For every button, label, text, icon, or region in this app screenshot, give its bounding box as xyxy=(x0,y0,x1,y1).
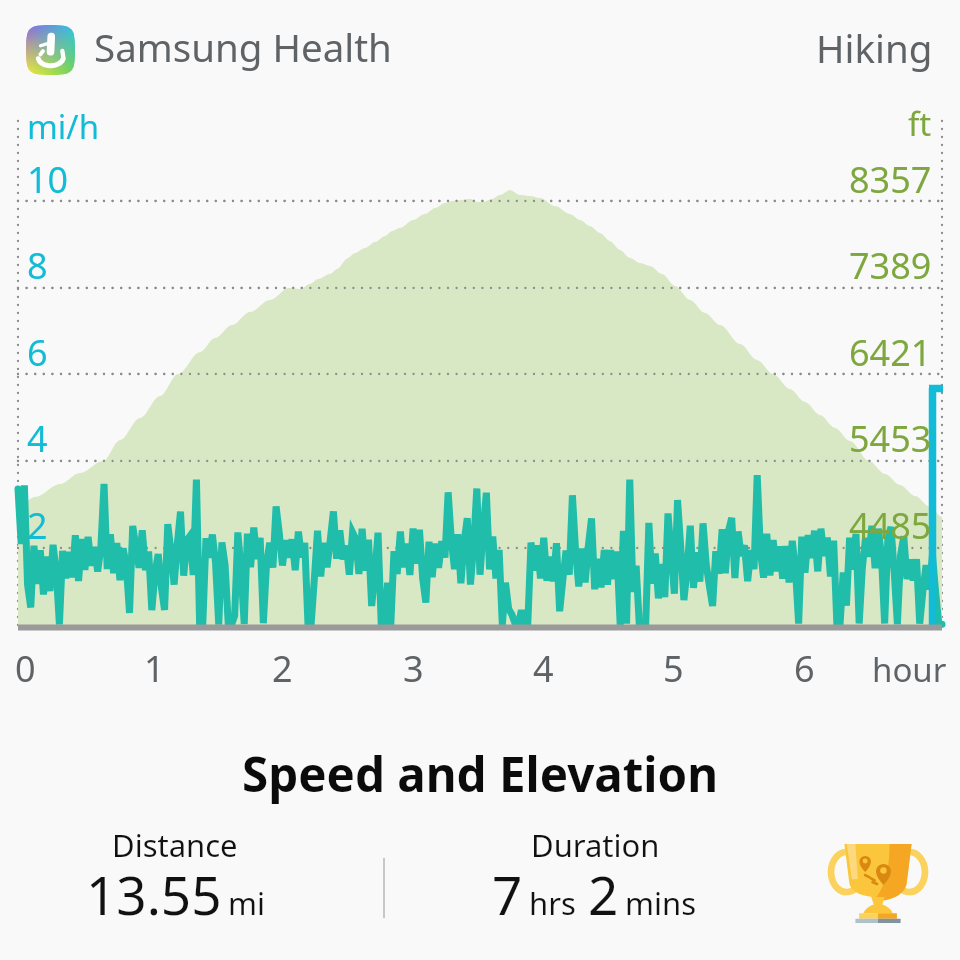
staticText: Distance xyxy=(112,824,238,866)
staticText: 6 xyxy=(27,328,48,377)
staticText: 10 xyxy=(27,155,69,204)
staticText: 13.55 xyxy=(86,858,222,930)
staticText: 2 xyxy=(27,501,48,550)
staticText: 7389 xyxy=(849,241,932,290)
other: Samsung Health app icon xyxy=(26,25,75,75)
staticText: 1 xyxy=(144,644,165,693)
staticText: 7 xyxy=(492,858,523,930)
button[interactable]: Achievement trophy xyxy=(817,822,939,944)
staticText: 4 xyxy=(533,644,554,693)
button[interactable]: 13.55 xyxy=(86,858,265,930)
staticText: 0 xyxy=(15,644,36,693)
button[interactable]: Samsung Health app icon xyxy=(18,8,400,92)
staticText: mi xyxy=(228,882,265,924)
staticText: 2 xyxy=(588,858,619,930)
staticText: mi/h xyxy=(27,104,100,149)
staticText: 5453 xyxy=(849,414,932,463)
staticText: 5 xyxy=(663,644,684,693)
staticText: mins xyxy=(625,882,696,924)
button[interactable]: Hiking xyxy=(800,6,949,90)
staticText: 4485 xyxy=(849,501,932,550)
staticText: hrs xyxy=(529,882,576,924)
staticText: 8357 xyxy=(849,155,932,204)
staticText: 3 xyxy=(403,644,424,693)
button[interactable]: Speed and Elevation xyxy=(242,741,719,806)
staticText: 2 xyxy=(272,644,293,693)
staticText: 4 xyxy=(27,414,48,463)
staticText: Samsung Health xyxy=(94,21,392,73)
staticText: 6 xyxy=(794,644,815,693)
staticText: 6421 xyxy=(849,328,932,377)
staticText: Duration xyxy=(531,824,660,866)
staticText: 8 xyxy=(27,241,48,290)
staticText: hour xyxy=(872,647,947,692)
button[interactable]: 7 xyxy=(492,858,696,930)
staticText: ft xyxy=(908,101,932,146)
staticText: Hiking xyxy=(816,22,933,74)
